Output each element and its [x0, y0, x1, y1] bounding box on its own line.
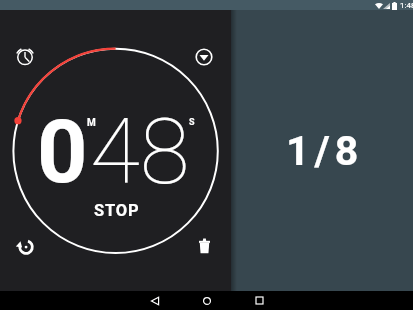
staticText: S	[189, 117, 195, 128]
staticText: 48	[90, 99, 190, 206]
button[interactable]: STOP	[85, 198, 149, 222]
button[interactable]: Alarm	[11, 42, 39, 70]
staticText: M	[87, 117, 96, 129]
button[interactable]: Home	[181, 291, 233, 310]
staticText: 1 / 8	[286, 127, 356, 175]
button[interactable]: Expand	[190, 43, 218, 71]
button[interactable]: Back	[129, 291, 181, 310]
button[interactable]: 1 / 8	[231, 10, 413, 291]
button[interactable]: Reset	[11, 232, 39, 260]
staticText: 0	[37, 100, 88, 203]
button[interactable]: Recents	[233, 291, 285, 310]
button[interactable]: Delete	[190, 232, 218, 260]
staticText: 1:48	[400, 1, 413, 10]
staticText: STOP	[94, 201, 140, 220]
